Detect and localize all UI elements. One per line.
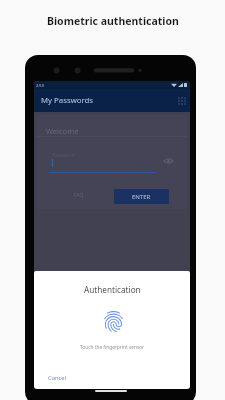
button[interactable]: ENTER [114,189,169,204]
staticText: Password [52,152,75,159]
button[interactable]: Show password [161,154,175,168]
staticText: Welcome [46,126,79,136]
staticText: Authentication [84,284,141,295]
staticText: 2:59 [36,83,44,88]
staticText: ENTER [132,193,151,201]
staticText: FAQ [74,192,84,199]
staticText: My Passwords [41,95,94,106]
staticText: Cancel [48,374,67,382]
button[interactable]: Apps [174,93,190,109]
button[interactable]: Cancel [45,372,70,384]
button[interactable]: FAQ [70,189,88,202]
staticText: Biometric authentication [47,14,179,28]
staticText: Touch the fingerprint sensor [80,344,145,351]
